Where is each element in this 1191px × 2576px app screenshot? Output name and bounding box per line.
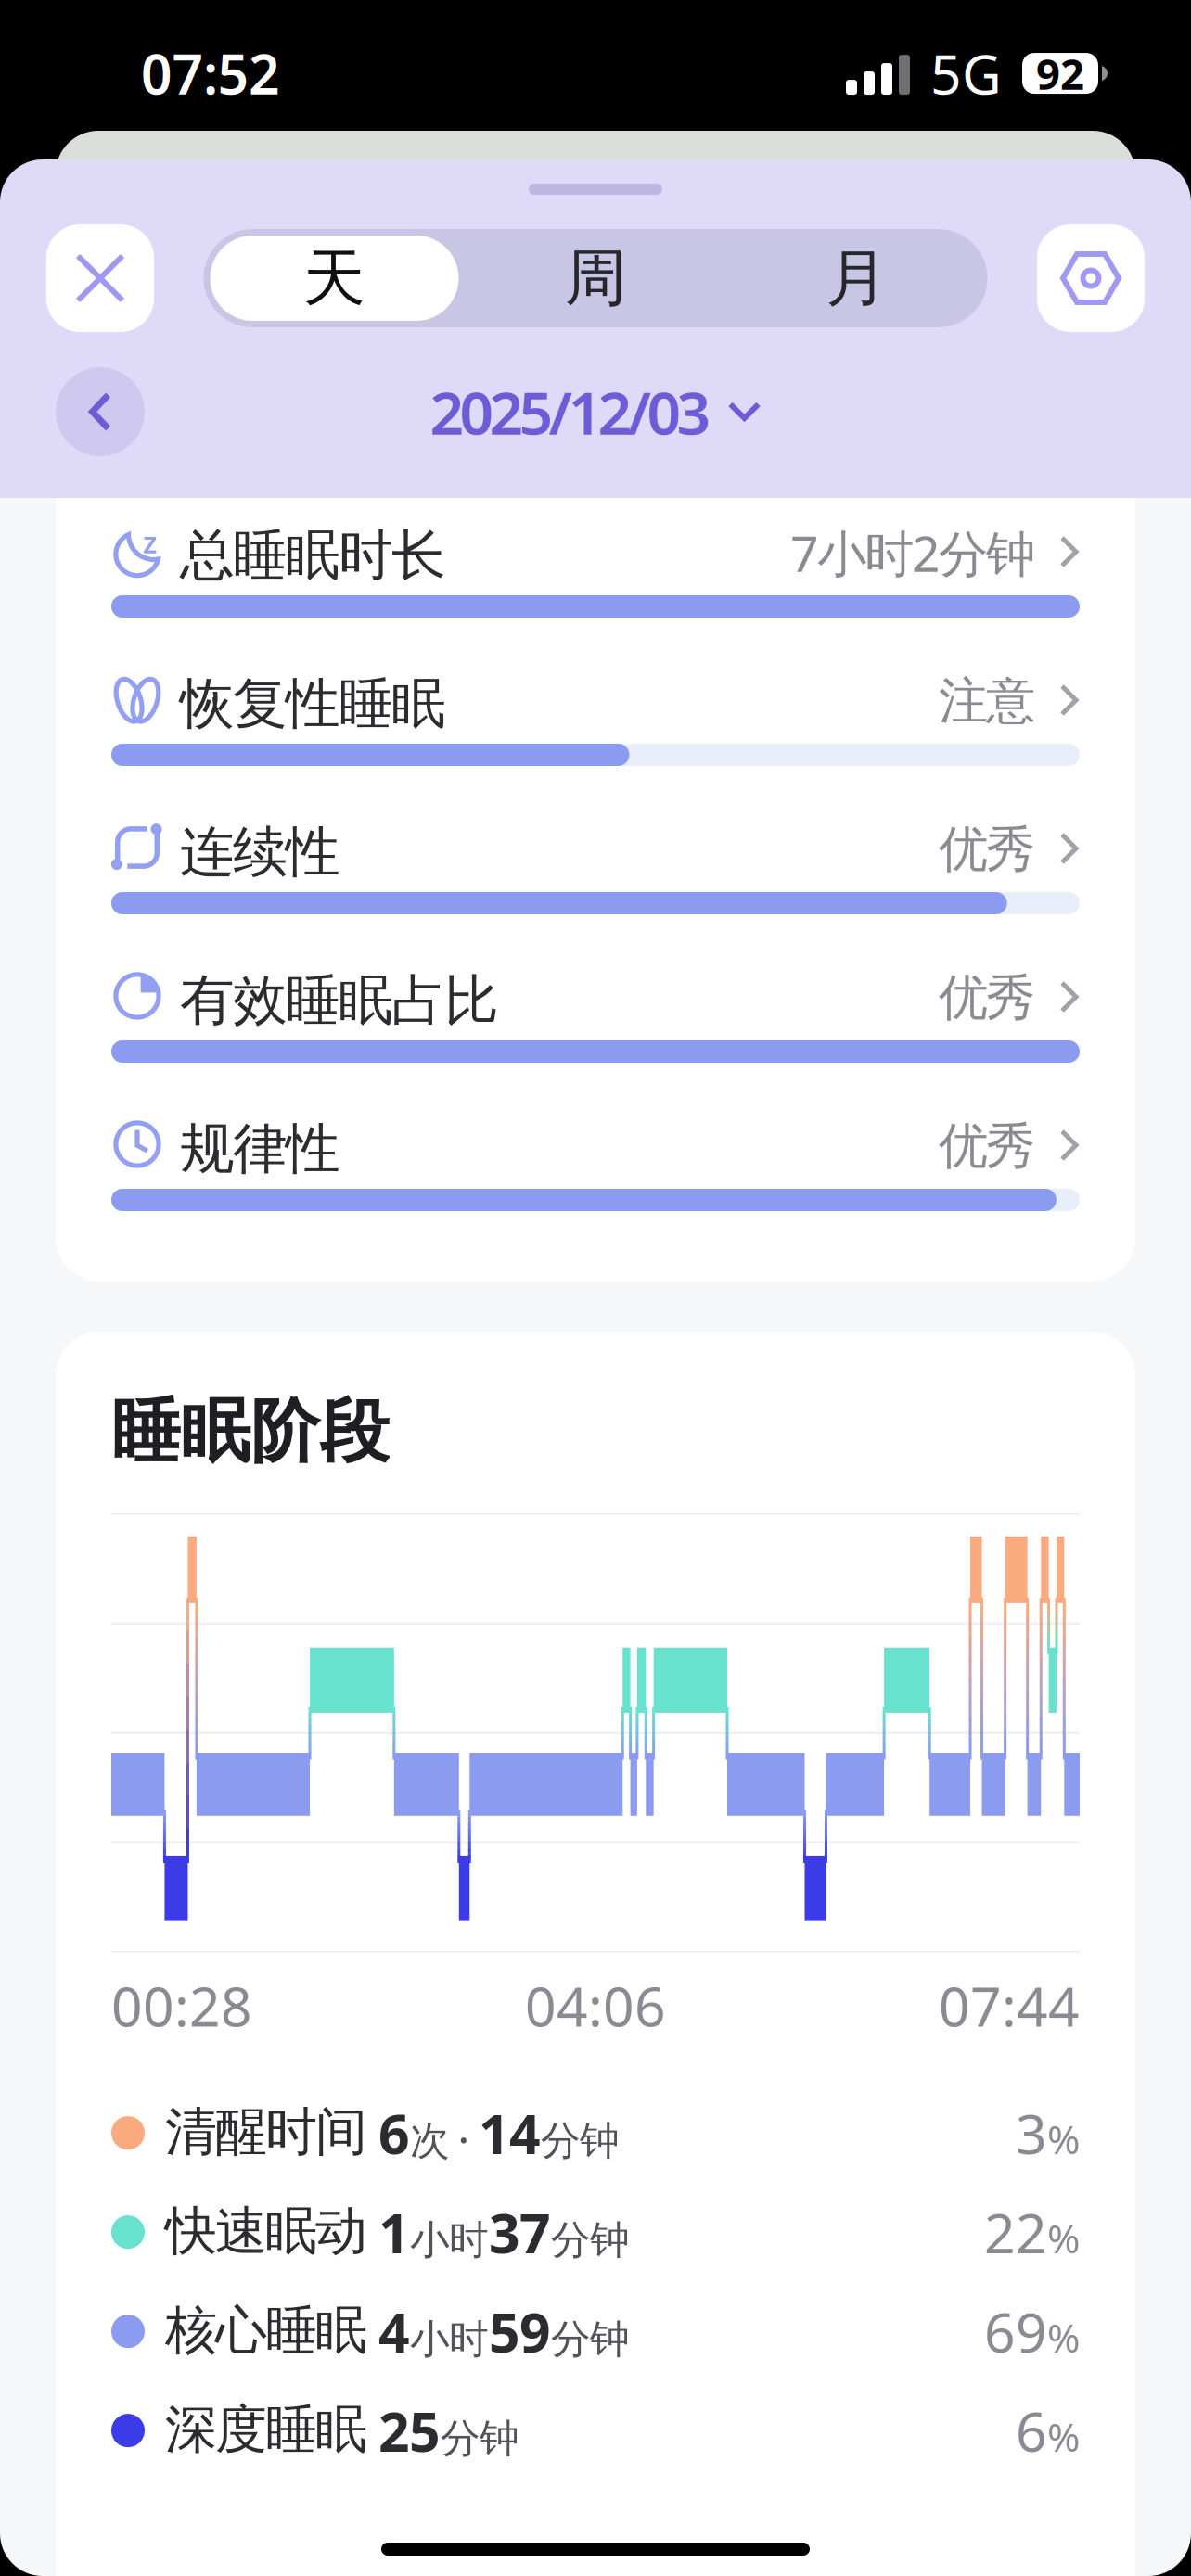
staticText: 天 — [303, 240, 365, 316]
button[interactable]: 周 — [465, 229, 727, 327]
staticText: 深度睡眠 — [165, 2398, 367, 2461]
button[interactable]: 有效睡眠占比 — [56, 943, 1135, 1091]
staticText: 睡眠阶段 — [111, 1389, 390, 1474]
staticText: 清醒时间 — [165, 2100, 367, 2164]
staticText: 有效睡眠占比 — [180, 967, 499, 1034]
staticText: 优秀 — [939, 967, 1035, 1028]
staticText: % — [1047, 2212, 1080, 2264]
staticText: 小时 — [410, 2315, 489, 2364]
staticText: 1 — [378, 2196, 410, 2268]
staticText: 25 — [378, 2394, 441, 2467]
staticText: z — [143, 522, 157, 561]
staticText: 注意 — [939, 671, 1035, 731]
staticText: 总睡眠时长 — [180, 522, 446, 589]
staticText: 快速眠动 — [165, 2199, 367, 2263]
staticText: 2025/12/03 — [430, 372, 711, 451]
button[interactable]: 连续性 — [56, 795, 1135, 943]
staticText: 分钟 — [551, 2315, 630, 2364]
staticText: % — [1047, 2410, 1080, 2463]
staticText: 次 · — [410, 2113, 479, 2165]
staticText: 分钟 — [441, 2414, 519, 2463]
staticText: 恢复性睡眠 — [180, 670, 446, 737]
staticText: 分钟 — [551, 2216, 630, 2264]
button[interactable]: 规律性 — [56, 1091, 1135, 1240]
staticText: 00:28 — [111, 1969, 252, 2042]
staticText: 7小时2分钟 — [790, 520, 1035, 585]
staticText: 周 — [565, 240, 627, 316]
button[interactable]: 月 — [727, 229, 987, 327]
button[interactable]: 恢复性睡眠 — [56, 646, 1135, 795]
staticText: 分钟 — [541, 2117, 620, 2165]
staticText: 69 — [984, 2295, 1047, 2367]
staticText: 07:52 — [141, 37, 280, 109]
staticText: 6 — [378, 2097, 410, 2169]
staticText: 连续性 — [180, 819, 340, 886]
button[interactable]: z — [56, 498, 1135, 646]
button[interactable]: 天 — [204, 229, 465, 327]
staticText: 优秀 — [939, 819, 1035, 880]
staticText: 核心睡眠 — [165, 2298, 367, 2362]
staticText: 规律性 — [180, 1116, 340, 1182]
staticText: 92 — [1036, 45, 1084, 101]
staticText: 14 — [479, 2097, 541, 2169]
button[interactable]: 关闭 — [46, 224, 154, 332]
staticText: 59 — [489, 2295, 551, 2367]
staticText: 3 — [1016, 2097, 1047, 2169]
staticText: 优秀 — [939, 1116, 1035, 1176]
staticText: 22 — [984, 2196, 1047, 2268]
staticText: 小时 — [410, 2216, 489, 2264]
button[interactable]: 2025/12/03 — [430, 367, 761, 456]
staticText: 6 — [1016, 2394, 1047, 2467]
staticText: 07:44 — [939, 1969, 1080, 2042]
staticText: 4 — [378, 2295, 410, 2367]
staticText: % — [1047, 2311, 1080, 2363]
staticText: 5G — [930, 37, 1002, 109]
staticText: 04:06 — [525, 1969, 666, 2042]
staticText: 37 — [489, 2196, 551, 2268]
button[interactable]: 上一天 — [56, 367, 145, 456]
button[interactable]: 设置 — [1037, 224, 1145, 332]
staticText: 月 — [826, 240, 888, 316]
staticText: % — [1047, 2112, 1080, 2165]
